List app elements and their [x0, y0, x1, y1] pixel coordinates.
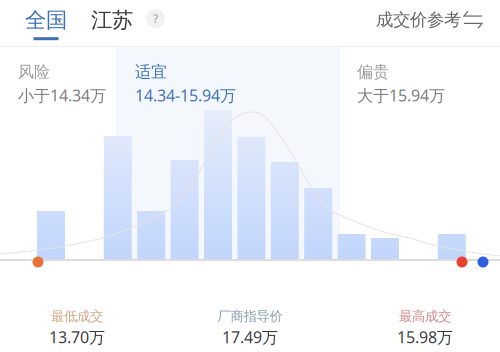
staticText: 14.34-15.94万 — [135, 85, 236, 106]
staticText: 最高成交 — [399, 308, 451, 324]
staticText: 小于14.34万 — [18, 85, 106, 106]
staticText: 偏贵 — [357, 62, 389, 82]
staticText: 大于15.94万 — [357, 85, 445, 106]
button[interactable]: 江苏 — [91, 7, 133, 33]
staticText: 风险 — [18, 62, 50, 82]
button[interactable]: 全国 — [25, 7, 67, 40]
staticText: 全国 — [25, 7, 67, 33]
button[interactable]: 成交价参考 — [376, 9, 482, 30]
staticText: ? — [153, 10, 158, 26]
button[interactable]: Help — [146, 9, 165, 28]
staticText: 最低成交 — [51, 308, 103, 324]
staticText: 厂商指导价 — [217, 308, 282, 324]
staticText: 适宜 — [135, 62, 167, 82]
staticText: 17.49万 — [222, 326, 278, 348]
staticText: 13.70万 — [49, 326, 105, 348]
staticText: 成交价参考 — [376, 9, 461, 30]
staticText: 江苏 — [91, 7, 133, 33]
staticText: 15.98万 — [397, 326, 453, 348]
